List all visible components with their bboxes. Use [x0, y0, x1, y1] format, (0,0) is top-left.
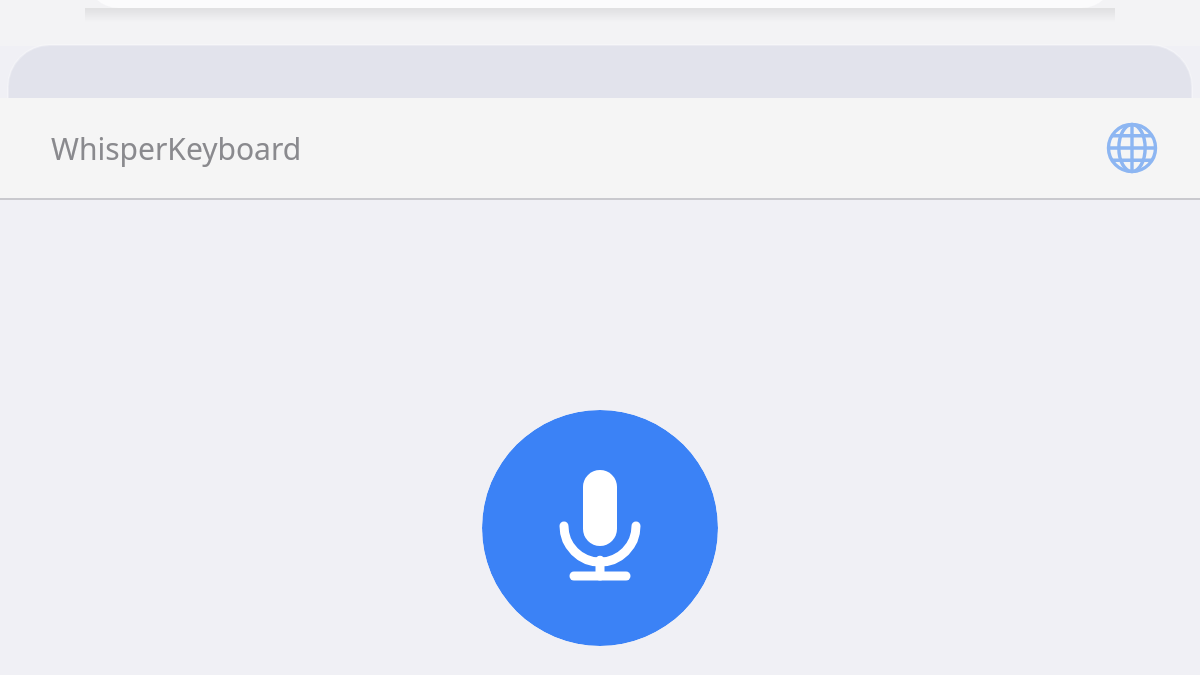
staticText: WhisperKeyboard	[51, 128, 302, 169]
button[interactable]: Start voice dictation	[482, 410, 718, 646]
button[interactable]: Switch keyboard language	[1103, 119, 1161, 177]
